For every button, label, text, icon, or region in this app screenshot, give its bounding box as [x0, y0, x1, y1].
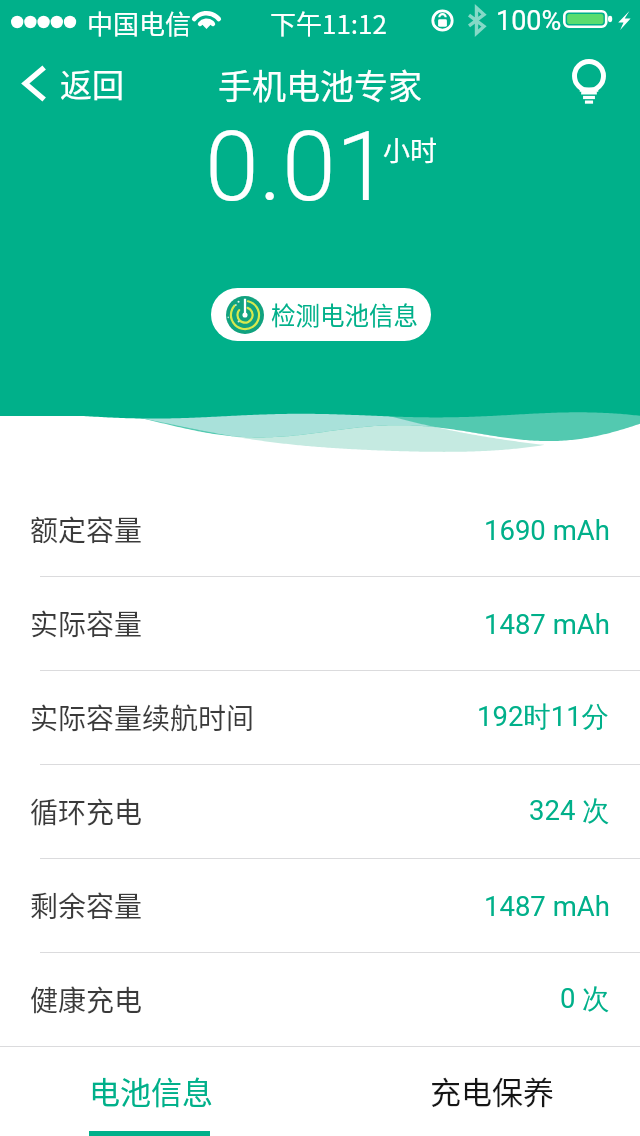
staticText: 0 次	[560, 982, 610, 1017]
button[interactable]: 实际容量续航时间	[0, 671, 640, 764]
button[interactable]: 实际容量	[0, 577, 640, 670]
staticText: 循环充电	[30, 791, 143, 832]
button[interactable]: 充电保养	[320, 1047, 640, 1136]
button[interactable]: 健康充电	[0, 953, 640, 1046]
staticText: 小时	[383, 130, 437, 169]
staticText: 下午11:12	[270, 4, 387, 42]
staticText: 实际容量	[30, 603, 143, 644]
staticText: 返回	[60, 60, 125, 106]
staticText: 健康充电	[30, 979, 143, 1020]
button[interactable]: Tips	[558, 52, 620, 114]
staticText: 中国电信	[87, 4, 192, 42]
staticText: 充电保养	[430, 1068, 554, 1113]
staticText: 1487 mAh	[484, 608, 610, 640]
staticText: 0.01	[205, 110, 390, 224]
button[interactable]: 剩余容量	[0, 859, 640, 952]
staticText: 192时11分	[477, 700, 610, 735]
staticText: 手机电池专家	[218, 60, 422, 109]
button[interactable]: 检测电池信息	[211, 288, 431, 341]
staticText: 324 次	[529, 794, 610, 829]
staticText: 电池信息	[89, 1068, 213, 1113]
button[interactable]: 返回	[0, 54, 139, 112]
button[interactable]: 电池信息	[0, 1047, 320, 1136]
staticText: 额定容量	[30, 509, 143, 550]
staticText: 实际容量续航时间	[30, 697, 255, 738]
staticText: 1690 mAh	[484, 514, 610, 546]
staticText: 100%	[496, 5, 562, 37]
staticText: 检测电池信息	[271, 297, 418, 332]
staticText: 1487 mAh	[484, 890, 610, 922]
button[interactable]: 循环充电	[0, 765, 640, 858]
button[interactable]: 额定容量	[0, 483, 640, 576]
staticText: 剩余容量	[30, 885, 143, 926]
